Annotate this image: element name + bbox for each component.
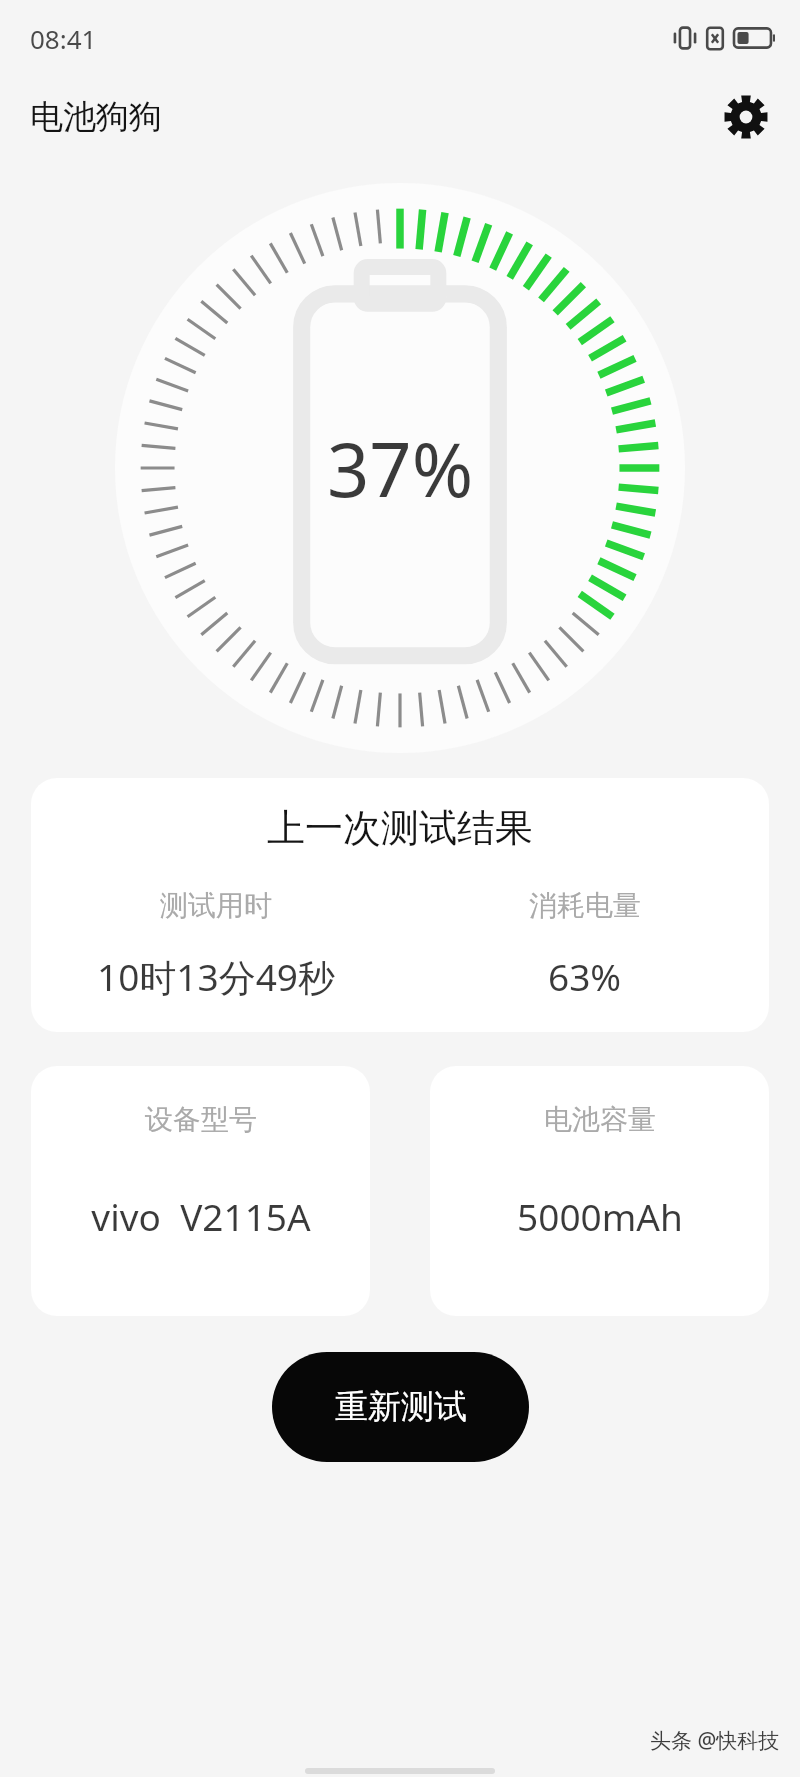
- staticText: 08:41: [30, 21, 97, 56]
- staticText: 重新测试: [335, 1386, 467, 1428]
- staticText: 测试用时: [160, 888, 272, 923]
- staticText: 头条 @快科技: [650, 1726, 780, 1755]
- staticText: 5000mAh: [517, 1191, 683, 1241]
- staticText: 电池容量: [544, 1102, 656, 1137]
- staticText: 电池狗狗: [30, 96, 162, 138]
- button[interactable]: 电池容量: [430, 1066, 769, 1316]
- staticText: 63%: [548, 951, 622, 1001]
- staticText: vivo V2115A: [91, 1191, 311, 1241]
- button[interactable]: Settings: [718, 89, 774, 145]
- staticText: 37%: [327, 418, 474, 519]
- staticText: 设备型号: [145, 1102, 257, 1137]
- staticText: 10时13分49秒: [97, 951, 335, 1002]
- button[interactable]: 上一次测试结果: [31, 778, 769, 1032]
- button[interactable]: 设备型号: [31, 1066, 370, 1316]
- staticText: 上一次测试结果: [31, 804, 769, 852]
- staticText: 消耗电量: [529, 888, 641, 923]
- button[interactable]: 重新测试: [272, 1352, 529, 1462]
